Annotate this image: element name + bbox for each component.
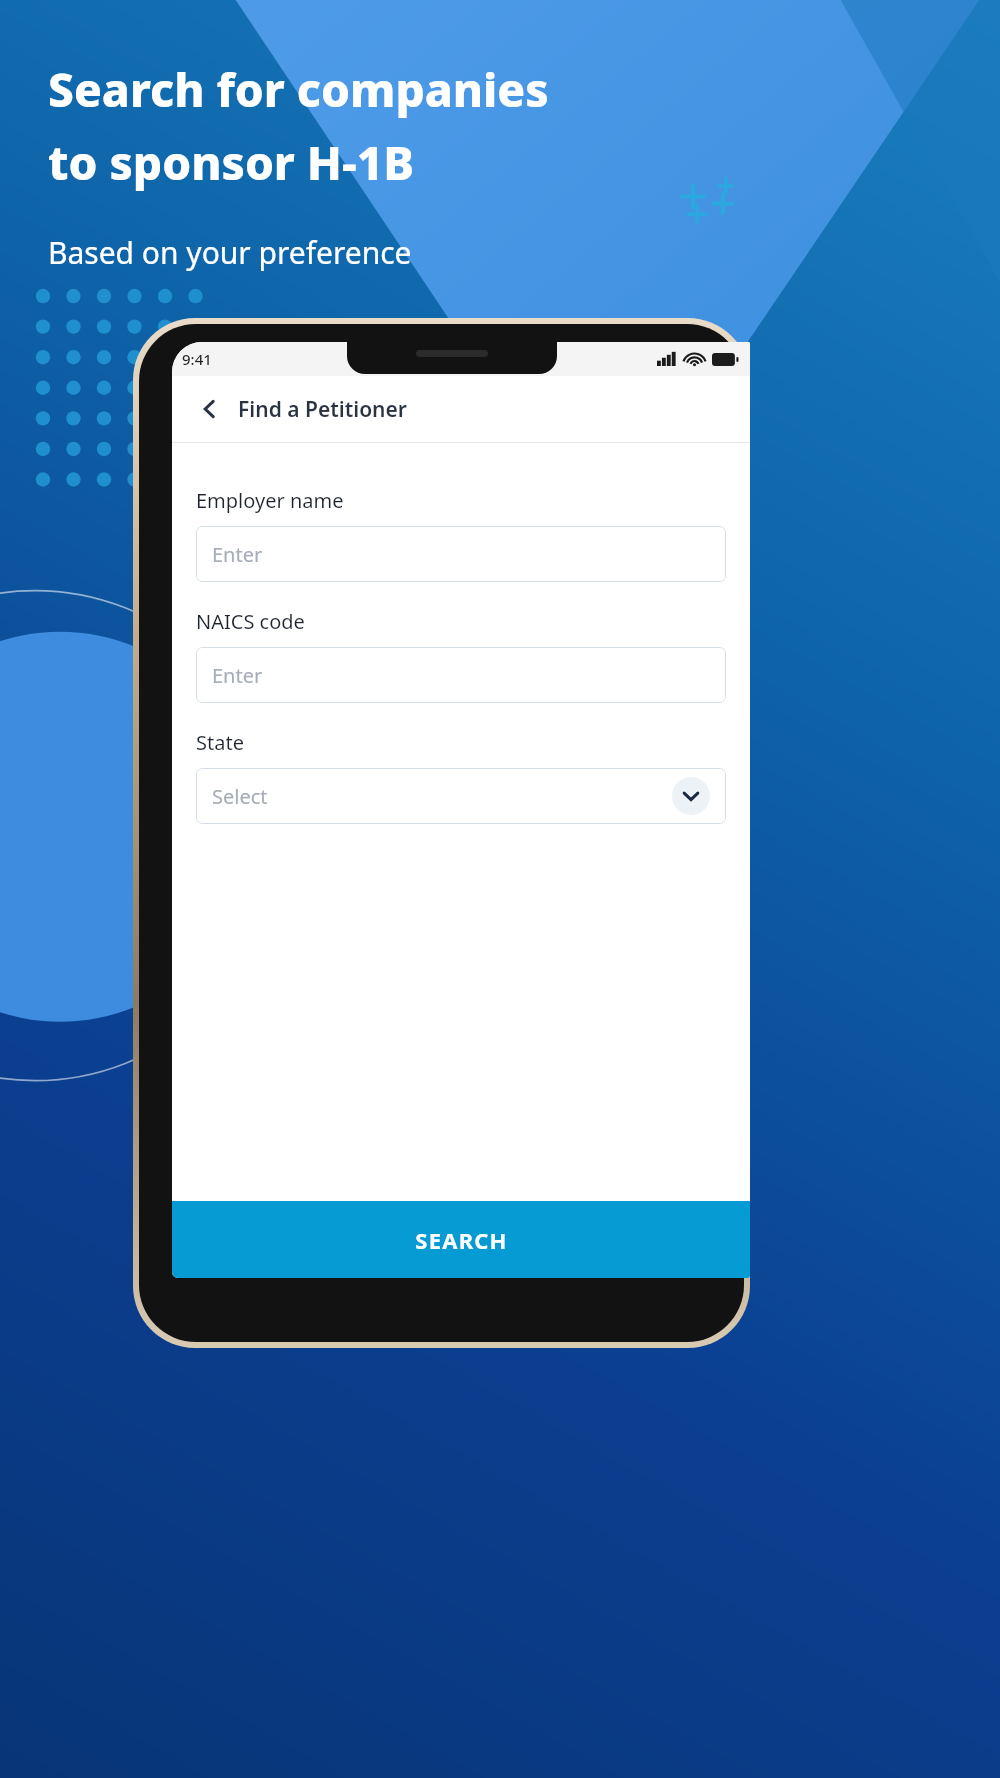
button[interactable]: Back bbox=[190, 389, 230, 429]
staticText: Find a Petitioner bbox=[238, 395, 407, 424]
staticText: Based on your preference bbox=[48, 232, 412, 273]
staticText: State bbox=[196, 729, 244, 756]
staticText: Enter bbox=[212, 541, 710, 568]
staticText: Employer name bbox=[196, 487, 344, 514]
button[interactable]: Enter bbox=[196, 647, 726, 703]
staticText: 9:41 bbox=[182, 349, 212, 369]
staticText: SEARCH bbox=[415, 1225, 508, 1255]
button[interactable]: SEARCH bbox=[172, 1201, 750, 1278]
button[interactable]: Select bbox=[196, 768, 726, 824]
staticText: NAICS code bbox=[196, 608, 305, 635]
staticText: Enter bbox=[212, 662, 710, 689]
button[interactable]: Enter bbox=[196, 526, 726, 582]
staticText: Select bbox=[212, 783, 672, 810]
staticText: to sponsor H-1B bbox=[48, 131, 415, 194]
staticText: Search for companies bbox=[48, 58, 549, 121]
other: Open state list bbox=[672, 777, 710, 815]
